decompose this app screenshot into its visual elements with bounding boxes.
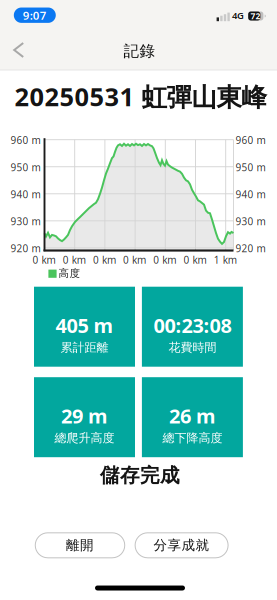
staticText: 920 m xyxy=(10,242,40,255)
staticText: 高度 xyxy=(58,267,80,280)
button[interactable]: 離開 xyxy=(35,533,125,558)
staticText: 950 m xyxy=(235,160,265,174)
staticText: 記錄 xyxy=(123,41,155,61)
button[interactable]: 00:23:08 xyxy=(142,287,243,367)
staticText: 20250531 虹彈山東峰 xyxy=(14,79,266,114)
staticText: 總下降高度 xyxy=(162,430,222,445)
staticText: 00:23:08 xyxy=(153,312,231,339)
staticText: 950 m xyxy=(10,160,40,174)
staticText: 29 m xyxy=(61,402,108,429)
button[interactable]: 26 m xyxy=(142,377,243,457)
staticText: 0 km xyxy=(63,253,86,267)
staticText: 總爬升高度 xyxy=(54,430,114,445)
staticText: 26 m xyxy=(169,402,216,429)
staticText: 4G xyxy=(232,9,244,22)
staticText: 1 km xyxy=(214,253,237,267)
staticText: 960 m xyxy=(235,133,265,147)
button[interactable]: 405 m xyxy=(34,287,135,367)
staticText: 0 km xyxy=(123,253,146,267)
button[interactable]: Screen recording / time xyxy=(14,7,56,23)
staticText: 分享成就 xyxy=(154,537,210,554)
staticText: 960 m xyxy=(10,133,40,147)
button[interactable]: 分享成就 xyxy=(135,533,228,558)
staticText: 花費時間 xyxy=(168,340,216,355)
staticText: 0 km xyxy=(183,253,206,267)
button[interactable]: Back xyxy=(0,33,30,67)
staticText: 930 m xyxy=(235,214,265,228)
staticText: 儲存完成 xyxy=(100,463,180,488)
button[interactable]: 29 m xyxy=(34,377,135,457)
staticText: 72 xyxy=(250,10,260,22)
staticText: 累計距離 xyxy=(60,340,108,355)
staticText: 405 m xyxy=(55,312,113,339)
staticText: 離開 xyxy=(66,537,94,554)
staticText: 930 m xyxy=(10,214,40,228)
staticText: 0 km xyxy=(32,253,55,267)
staticText: 0 km xyxy=(93,253,116,267)
staticText: 940 m xyxy=(10,187,40,201)
staticText: 9:07 xyxy=(23,7,47,23)
staticText: 920 m xyxy=(235,242,265,255)
staticText: 0 km xyxy=(153,253,176,267)
staticText: 940 m xyxy=(235,187,265,201)
